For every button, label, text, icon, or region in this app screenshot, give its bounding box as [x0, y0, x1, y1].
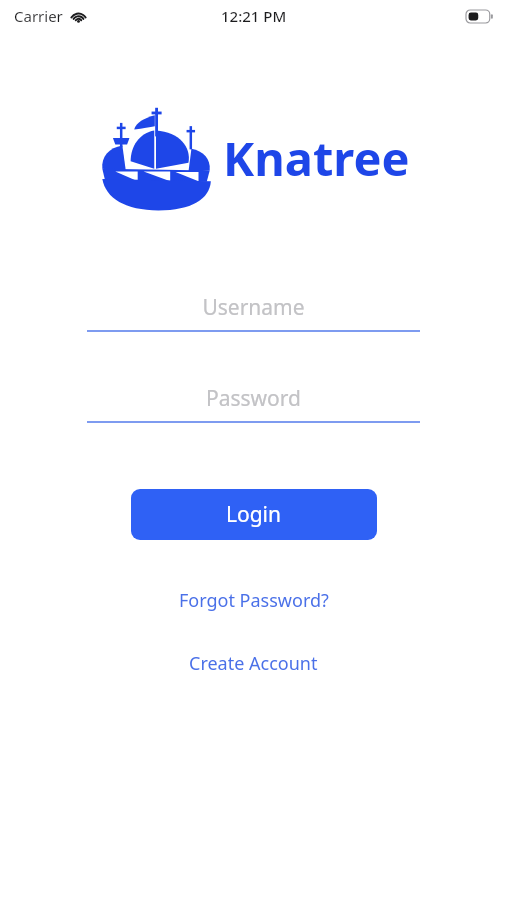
button[interactable]: Forgot Password? [169, 584, 339, 617]
button[interactable]: Username [87, 290, 420, 332]
staticText: Create Account [189, 651, 318, 676]
staticText: Password [206, 384, 301, 413]
staticText: Username [202, 293, 305, 322]
staticText: Knatree [223, 126, 410, 190]
staticText: Login [226, 500, 282, 529]
staticText: 12:21 PM [221, 6, 287, 26]
button[interactable]: Login [131, 489, 377, 540]
button[interactable]: Create Account [179, 647, 328, 680]
staticText: Carrier [14, 6, 63, 26]
staticText: Forgot Password? [179, 588, 329, 613]
button[interactable]: Password [87, 381, 420, 423]
